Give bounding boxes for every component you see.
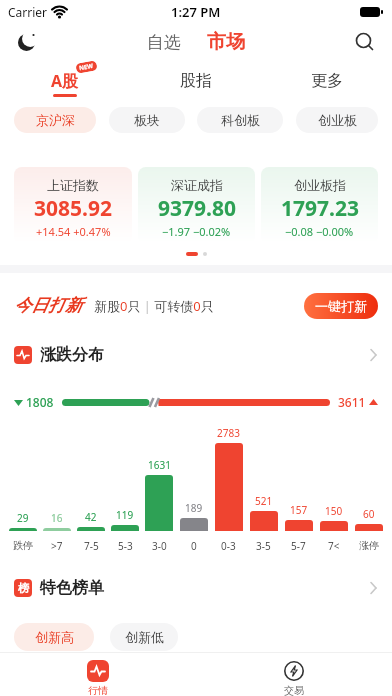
button[interactable]: 交易 [196,660,392,696]
button[interactable]: 更多 [261,60,392,102]
button[interactable]: 涨跌分布 [14,338,378,372]
staticText: 60 [363,507,375,521]
staticText: 一键打新 [315,298,367,314]
button[interactable]: 深证成指 [138,167,255,243]
button[interactable]: 上证指数 [14,167,132,243]
staticText: 创新低 [125,629,164,645]
staticText: 119 [116,508,134,522]
button[interactable]: 自选 [147,32,181,53]
button[interactable]: 创业板指 [261,167,378,243]
button[interactable]: 创业板 [296,107,378,133]
button[interactable]: 榜 [14,571,378,605]
staticText: 创新高 [35,629,74,645]
staticText: 521 [255,494,273,508]
button[interactable]: 创新低 [110,623,178,651]
staticText: −1.97 −0.02% [162,224,231,239]
button[interactable] [354,31,376,53]
staticText: −0.08 −0.00% [285,224,354,239]
button[interactable]: 创新高 [14,623,94,651]
button[interactable]: 板块 [109,107,185,133]
staticText: 1631 [148,458,171,472]
staticText: 板块 [134,112,160,128]
staticText: A股 [51,70,79,92]
staticText: 7-5 [84,539,99,553]
staticText: NEW [78,62,95,72]
staticText: 更多 [311,71,343,91]
staticText: 涨停 [359,539,379,552]
staticText: 5-3 [118,539,133,553]
button[interactable]: 行情 [0,660,196,696]
staticText: 股指 [180,71,212,91]
button[interactable]: 科创板 [197,107,283,133]
staticText: 新股0只 | 可转债0只 [94,297,214,315]
staticText: 150 [325,504,343,518]
staticText: 榜 [18,581,29,595]
staticText: 3-0 [152,539,167,553]
staticText: 29 [17,511,29,525]
staticText: 行情 [88,684,108,696]
staticText: 跌停 [13,539,33,552]
staticText: >7 [51,539,63,553]
staticText: 157 [290,503,308,517]
staticText: 上证指数 [47,177,99,193]
staticText: 0 [191,539,197,553]
staticText: 1808 [26,394,54,410]
staticText: 42 [85,510,97,524]
button[interactable]: 市场 [207,30,245,54]
staticText: 16 [51,511,63,525]
staticText: 交易 [284,684,304,696]
staticText: 科创板 [221,112,260,128]
staticText: 3611 [338,394,366,410]
staticText: 3085.92 [34,194,112,223]
staticText: 今日打新 [14,295,82,316]
staticText: 创业板 [318,112,357,128]
staticText: 3-5 [256,539,271,553]
staticText: 创业板指 [294,177,346,193]
button[interactable]: 股指 [130,60,261,102]
staticText: 京沪深 [36,112,75,128]
staticText: 1:27 PM [171,3,221,21]
staticText: 特色榜单 [40,578,104,598]
staticText: 2783 [217,426,240,440]
staticText: 1797.23 [281,194,359,223]
staticText: +14.54 +0.47% [36,224,111,239]
button[interactable]: 一键打新 [304,293,378,319]
button[interactable] [16,31,38,53]
staticText: 0-3 [221,539,236,553]
staticText: 9379.80 [158,194,236,223]
staticText: 189 [185,501,203,515]
staticText: 深证成指 [171,177,223,193]
button[interactable]: 京沪深 [14,107,96,133]
staticText: 7< [328,539,340,553]
staticText: 涨跌分布 [40,345,104,365]
staticText: 5-7 [291,539,306,553]
button[interactable]: A股 [0,60,130,102]
staticText: Carrier [8,4,48,20]
